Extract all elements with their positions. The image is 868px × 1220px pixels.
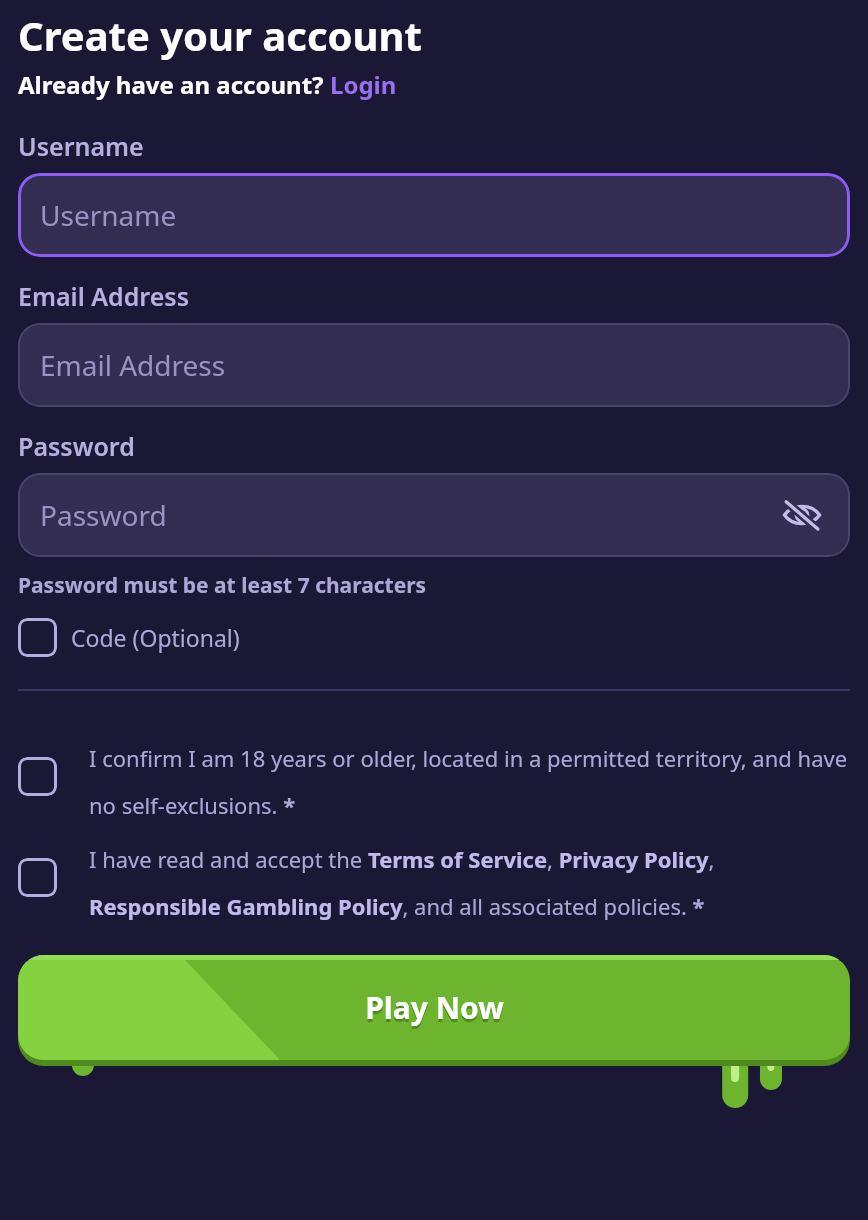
other: Checkbox [18,618,57,657]
staticText: Code (Optional) [71,622,240,653]
staticText: Play Now [365,990,504,1031]
button[interactable]: Password [18,473,850,557]
staticText: Password [40,496,167,534]
staticText: Login [330,68,397,101]
staticText: Email Address [18,279,189,313]
button[interactable]: Username [18,173,850,257]
staticText: Already have an account? [18,68,330,101]
button[interactable]: Checkbox [18,844,850,921]
staticText: Password [18,429,135,463]
button[interactable]: Email Address [18,323,850,407]
button[interactable]: Checkbox [18,743,850,820]
other: Checkbox [18,858,57,897]
other: Checkbox [18,757,57,796]
staticText: Username [40,196,177,234]
staticText: I have read and accept the Terms of Serv… [89,844,850,921]
staticText: Username [18,129,144,163]
button[interactable]: Play Now [18,955,850,1095]
button[interactable]: Checkbox [18,618,240,657]
button[interactable]: Show password [776,489,828,541]
staticText: Email Address [40,346,226,384]
staticText: I confirm I am 18 years or older, locate… [89,743,850,820]
staticText: Password must be at least 7 characters [18,571,427,600]
staticText: Play Now [365,987,504,1028]
button[interactable]: Login [330,68,397,101]
staticText: Create your account [18,8,422,62]
